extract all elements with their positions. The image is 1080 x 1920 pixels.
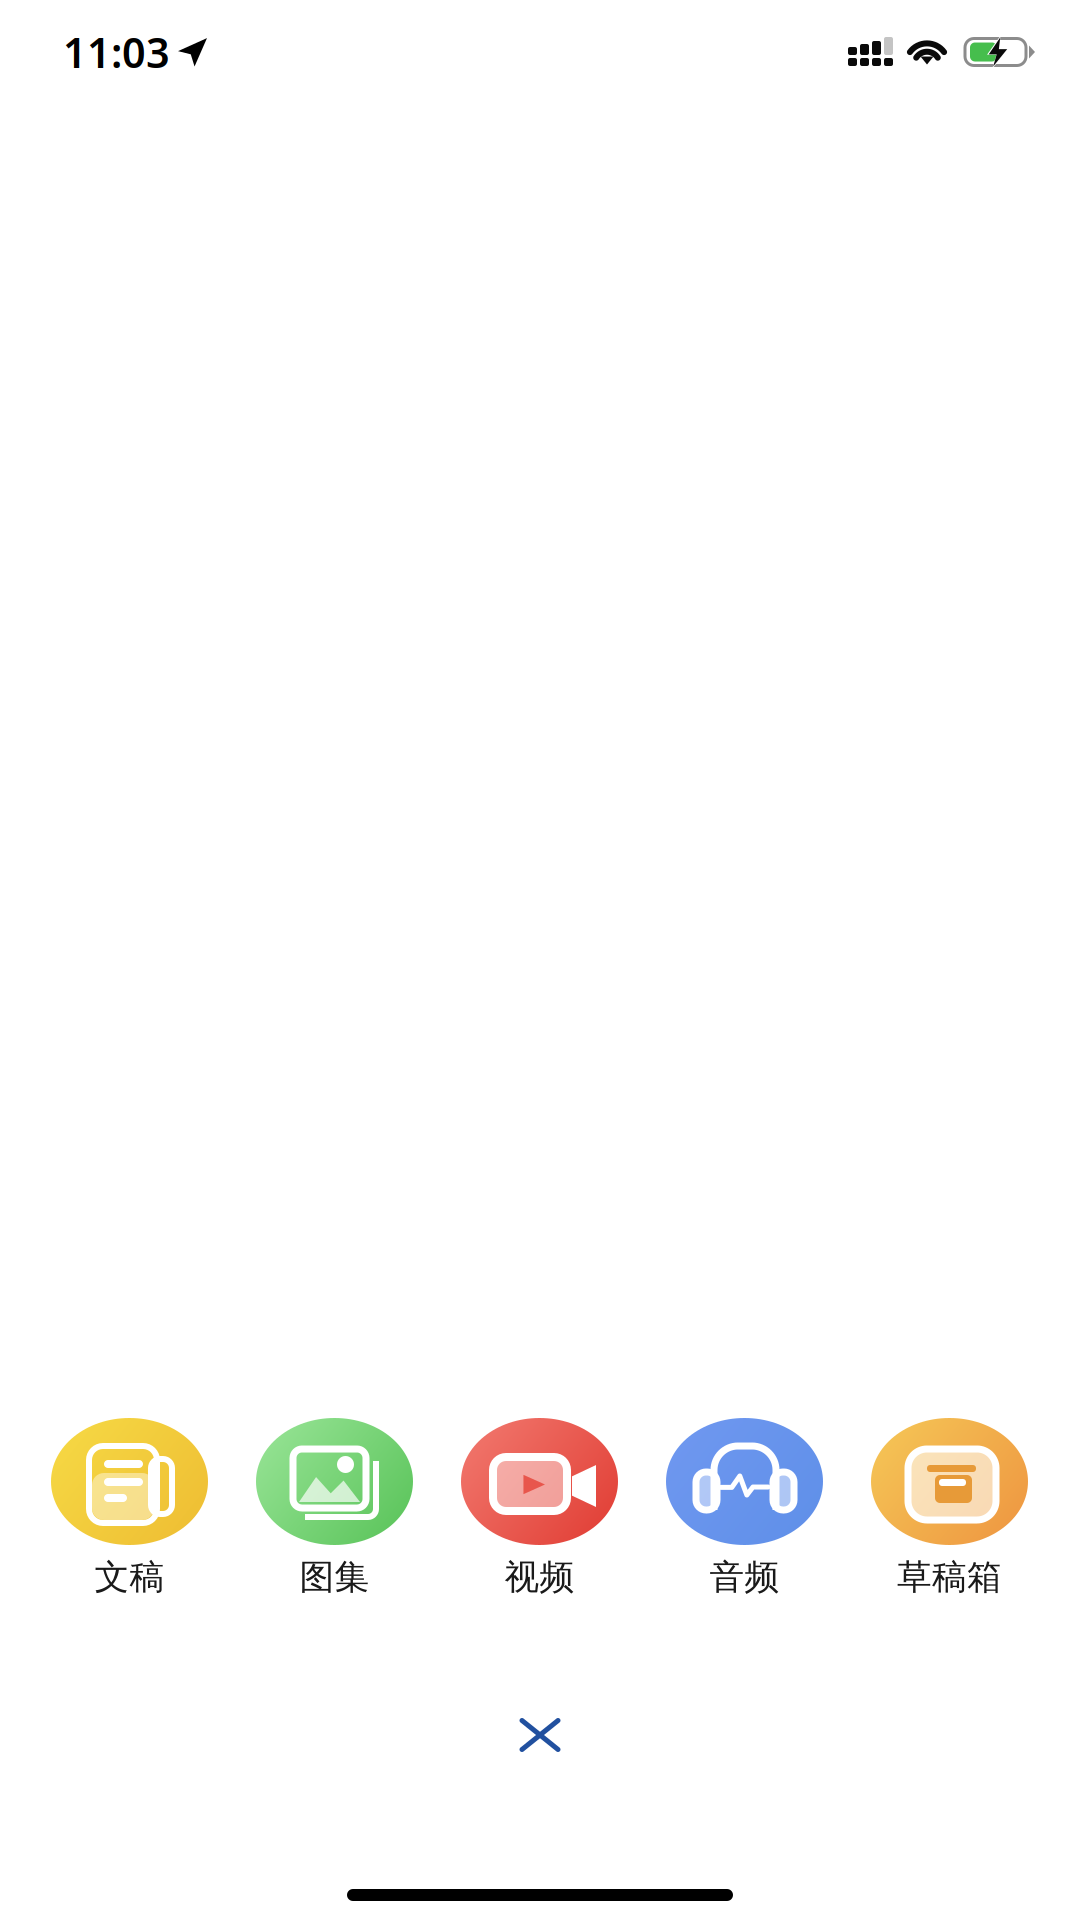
button[interactable]: 文稿	[51, 1418, 208, 1599]
button[interactable]: 图集	[256, 1418, 413, 1599]
button[interactable]: Close	[475, 1670, 605, 1800]
staticText: 11:03	[63, 25, 170, 79]
button[interactable]: 音频	[666, 1418, 823, 1599]
button[interactable]: 草稿箱	[871, 1418, 1028, 1599]
staticText: 图集	[299, 1556, 369, 1599]
button[interactable]: 视频	[461, 1418, 618, 1599]
staticText: 文稿	[94, 1556, 164, 1599]
staticText: 草稿箱	[897, 1556, 1002, 1599]
staticText: 音频	[709, 1556, 779, 1599]
staticText: 视频	[504, 1556, 574, 1599]
